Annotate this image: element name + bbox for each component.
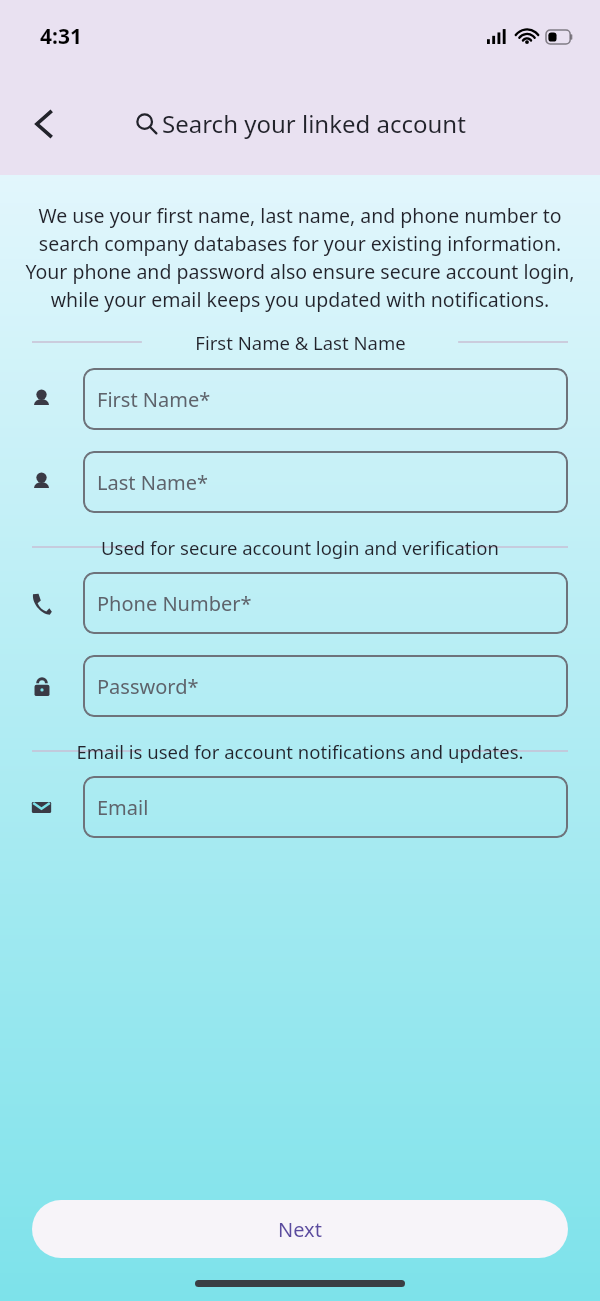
staticText: Email	[97, 794, 149, 821]
staticText: 4:31	[40, 22, 82, 51]
staticText: Password*	[97, 673, 199, 700]
button[interactable]: Phone Number*	[83, 572, 568, 634]
button[interactable]: First Name*	[83, 368, 568, 430]
staticText: Phone Number*	[97, 590, 252, 617]
button[interactable]: Back	[20, 100, 68, 148]
staticText: Email is used for account notifications …	[76, 739, 524, 764]
button[interactable]: Next	[32, 1200, 568, 1258]
button[interactable]: Email	[83, 776, 568, 838]
staticText: Last Name*	[97, 469, 209, 496]
staticText: Search your linked account	[162, 107, 466, 140]
staticText: We use your first name, last name, and p…	[19, 202, 581, 313]
staticText: Next	[278, 1216, 322, 1243]
staticText: Used for secure account login and verifi…	[101, 535, 499, 560]
staticText: First Name & Last Name	[195, 330, 406, 355]
button[interactable]: Last Name*	[83, 451, 568, 513]
staticText: First Name*	[97, 386, 211, 413]
button[interactable]: Password*	[83, 655, 568, 717]
